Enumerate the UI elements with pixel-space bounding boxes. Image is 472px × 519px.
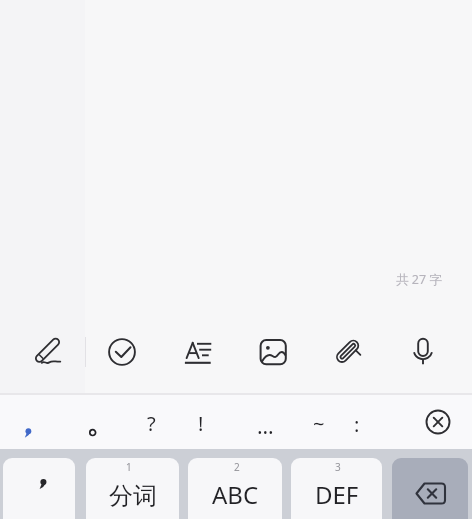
staticText: 分词 bbox=[109, 481, 157, 511]
button[interactable] bbox=[26, 329, 70, 373]
button[interactable]: … bbox=[240, 399, 290, 453]
button[interactable]: ? bbox=[126, 396, 176, 450]
staticText: : bbox=[354, 411, 360, 438]
staticText: … bbox=[257, 412, 274, 441]
button[interactable] bbox=[100, 330, 144, 374]
button[interactable]: ! bbox=[176, 396, 226, 450]
button[interactable]: : bbox=[332, 397, 382, 451]
staticText: ABC bbox=[212, 478, 259, 511]
button[interactable] bbox=[3, 458, 75, 519]
staticText: 3 bbox=[335, 460, 341, 474]
button[interactable] bbox=[401, 328, 445, 372]
button[interactable] bbox=[72, 405, 112, 445]
staticText: 1 bbox=[126, 460, 132, 474]
button[interactable] bbox=[420, 404, 456, 440]
button[interactable] bbox=[86, 458, 179, 519]
button[interactable] bbox=[392, 458, 468, 519]
button[interactable] bbox=[291, 458, 382, 519]
button[interactable] bbox=[188, 458, 282, 519]
staticText: ~ bbox=[313, 410, 325, 437]
staticText: 共 27 字 bbox=[396, 271, 442, 288]
staticText: ? bbox=[147, 410, 156, 437]
staticText: ! bbox=[198, 410, 204, 437]
button[interactable] bbox=[176, 330, 220, 374]
button[interactable] bbox=[3, 406, 53, 460]
button[interactable] bbox=[326, 329, 370, 373]
staticText: 2 bbox=[234, 460, 240, 474]
button[interactable]: ~ bbox=[294, 396, 344, 450]
staticText: DEF bbox=[315, 478, 359, 511]
button[interactable] bbox=[251, 330, 295, 374]
